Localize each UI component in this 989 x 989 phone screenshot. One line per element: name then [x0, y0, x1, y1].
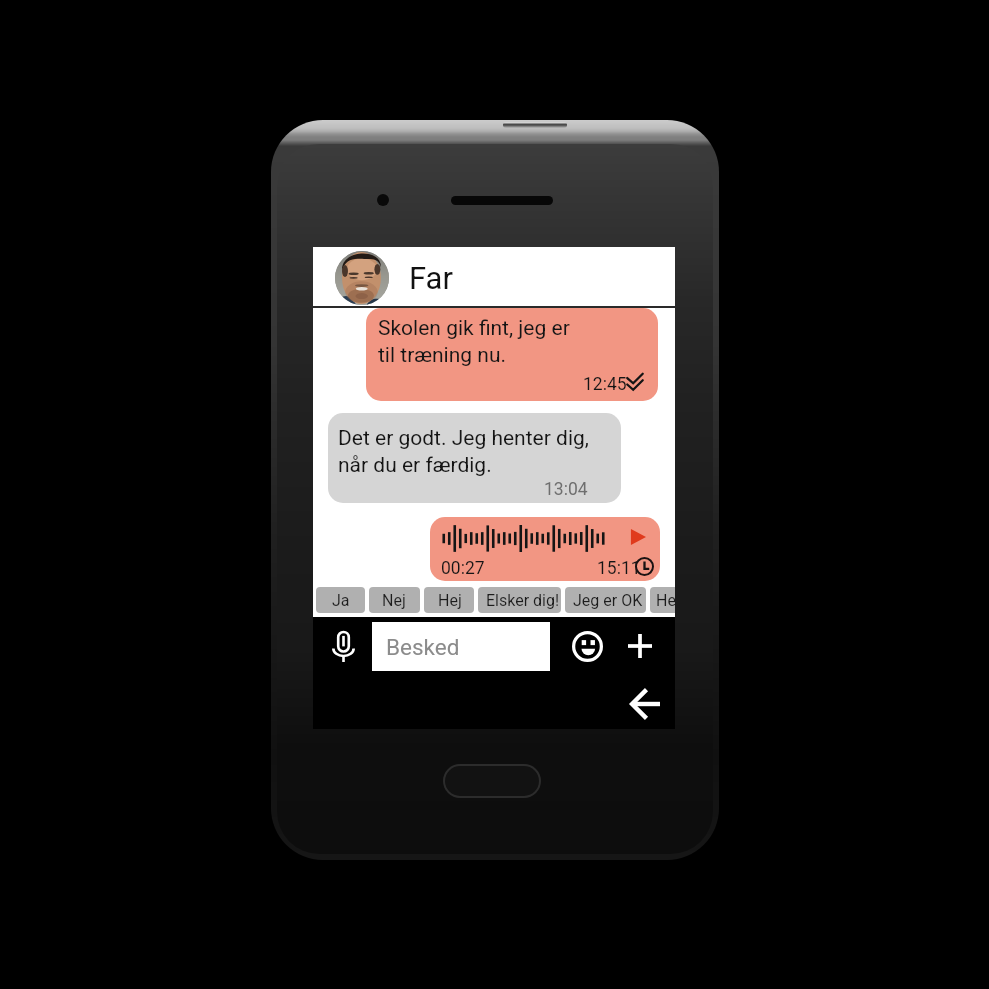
button[interactable]: Voice input	[321, 621, 366, 673]
staticText: Det er godt. Jeg henter dig, når du er f…	[338, 426, 589, 477]
staticText: Jeg er OK	[573, 591, 643, 610]
staticText: 13:04	[544, 479, 588, 500]
button[interactable]: Nej	[369, 587, 420, 613]
button[interactable]: Emoji	[565, 624, 609, 668]
button[interactable]	[313, 247, 675, 307]
button[interactable]: Jeg er OK	[565, 587, 646, 613]
button[interactable]: Hej	[650, 587, 675, 613]
staticText: Hej	[656, 591, 675, 610]
button[interactable]: Besked	[372, 622, 550, 671]
button[interactable]: Det er godt. Jeg henter dig, når du er f…	[328, 413, 621, 503]
staticText: Skolen gik fint, jeg er til træning nu.	[378, 316, 570, 367]
button[interactable]: Skolen gik fint, jeg er til træning nu.	[366, 308, 658, 401]
button[interactable]: Ja	[316, 587, 365, 613]
staticText: Nej	[382, 591, 406, 610]
button[interactable]: Add	[618, 624, 662, 668]
staticText: Besked	[386, 634, 460, 660]
staticText: 15:11	[597, 558, 641, 579]
staticText: Far	[409, 260, 453, 296]
button[interactable]: Back	[623, 681, 668, 726]
staticText: Ja	[332, 591, 350, 610]
staticText: 12:45	[583, 374, 627, 395]
staticText: 00:27	[441, 558, 485, 579]
button[interactable]: Hej	[424, 587, 474, 613]
button[interactable]: 00:27	[430, 517, 660, 581]
staticText: Hej	[438, 591, 462, 610]
button[interactable]: Elsker dig!	[478, 587, 561, 613]
staticText: Elsker dig!	[486, 591, 560, 610]
